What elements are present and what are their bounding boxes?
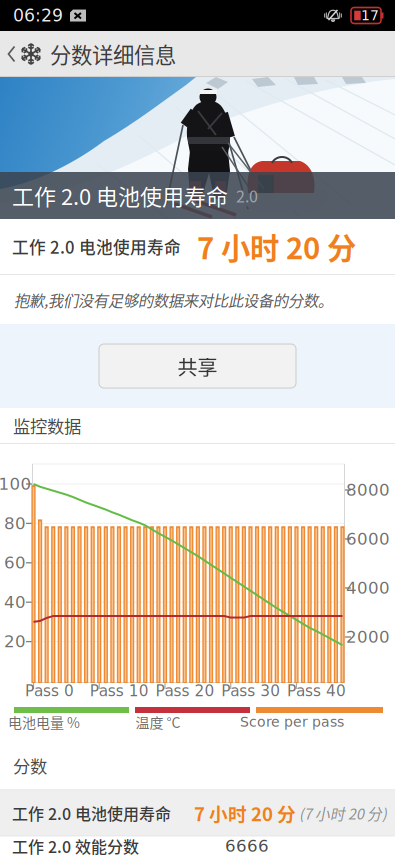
staticText: 抱歉,我们没有足够的数据来对比此设备的分数。: [14, 288, 333, 311]
button[interactable]: Back: [0, 31, 44, 77]
staticText: 4000: [346, 578, 390, 598]
button[interactable]: 共享: [99, 344, 296, 388]
staticText: 工作 2.0 效能分数: [12, 834, 139, 855]
staticText: 06:29: [13, 5, 63, 26]
staticText: 分数详细信息: [50, 39, 176, 69]
staticText: 2.0: [228, 184, 258, 207]
staticText: 分数: [13, 753, 47, 778]
staticText: 监控数据: [13, 413, 81, 438]
staticText: 电池电量 %: [8, 712, 80, 732]
staticText: Pass 10: [90, 682, 149, 700]
staticText: Pass 0: [25, 682, 74, 700]
staticText: Pass 20: [155, 682, 214, 700]
staticText: Pass 30: [221, 682, 280, 700]
staticText: 8000: [346, 480, 390, 500]
staticText: 60: [4, 553, 26, 572]
staticText: 17: [361, 7, 379, 24]
staticText: 7 小时 20 分: [194, 799, 296, 826]
staticText: Pass 40: [287, 682, 346, 700]
staticText: Score per pass: [240, 714, 344, 730]
staticText: 20: [4, 632, 26, 651]
staticText: 工作 2.0 电池使用寿命: [12, 180, 228, 211]
staticText: 工作 2.0 电池使用寿命: [12, 801, 171, 825]
staticText: 6666: [225, 836, 269, 855]
staticText: 温度 °C: [135, 712, 180, 732]
staticText: 2000: [346, 627, 390, 647]
staticText: 80: [4, 514, 26, 533]
staticText: 6000: [346, 529, 390, 549]
staticText: 工作 2.0 电池使用寿命: [12, 234, 181, 258]
staticText: 100: [0, 474, 31, 494]
staticText: 40: [4, 592, 26, 612]
staticText: 7 小时 20 分: [197, 225, 356, 268]
staticText: 共享: [177, 351, 217, 380]
staticText: (7 小时 20 分): [296, 802, 387, 824]
